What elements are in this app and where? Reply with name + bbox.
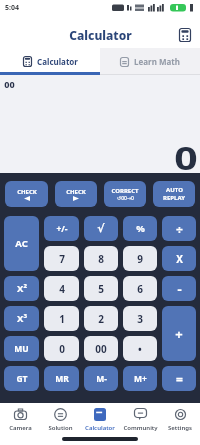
button[interactable]: 4 (44, 276, 79, 301)
button[interactable]: M- (84, 366, 118, 391)
staticText: 0 (59, 342, 65, 356)
staticText: % (136, 222, 145, 235)
button[interactable]: CHECK (5, 181, 48, 207)
staticText: = (176, 371, 183, 387)
staticText: 00 (95, 342, 107, 356)
staticText: + (175, 325, 183, 343)
button[interactable]: 6 (123, 276, 157, 301)
button[interactable]: ÷ (162, 216, 196, 241)
button[interactable]: +/- (44, 216, 79, 241)
staticText: AUTO (166, 186, 183, 194)
button[interactable] (179, 28, 191, 42)
staticText: - (177, 280, 182, 298)
staticText: Solution (48, 424, 73, 432)
staticText: CHECK (66, 188, 86, 196)
button[interactable]: M+ (123, 366, 157, 391)
button[interactable]: MR (44, 366, 79, 391)
staticText: Community (123, 424, 158, 432)
button[interactable]: 1 (44, 306, 79, 331)
staticText: 5 (98, 282, 104, 296)
staticText: 8 (98, 252, 104, 266)
staticText: Camera (9, 424, 32, 432)
button[interactable]: 8 (84, 246, 118, 271)
staticText: MR (55, 373, 69, 385)
button[interactable]: CHECK (55, 181, 97, 207)
button[interactable]: X² (4, 276, 39, 301)
button[interactable]: √ (84, 216, 118, 241)
button[interactable]: X³ (4, 306, 39, 331)
staticText: MU (14, 343, 29, 355)
staticText: Calculator (37, 56, 78, 67)
staticText: AC (15, 237, 28, 250)
staticText: X² (17, 282, 27, 295)
button[interactable]: • (123, 336, 157, 361)
staticText: ↺00→0 (117, 195, 134, 202)
button[interactable]: Settings (160, 403, 200, 437)
staticText: REPLAY (163, 194, 185, 202)
staticText: 7 (59, 252, 65, 266)
button[interactable]: GT (4, 366, 39, 391)
button[interactable]: CORRECT (104, 181, 146, 207)
button[interactable]: Calculator (0, 48, 100, 75)
button[interactable]: Learn Math (100, 48, 200, 75)
button[interactable]: Community (120, 403, 160, 437)
staticText: 00 (4, 78, 15, 90)
button[interactable]: AC (4, 216, 39, 271)
button[interactable]: 5 (84, 276, 118, 301)
button[interactable]: 3 (123, 306, 157, 331)
staticText: Learn Math (134, 56, 180, 67)
button[interactable]: 2 (84, 306, 118, 331)
staticText: • (138, 342, 142, 356)
staticText: 6 (137, 282, 143, 296)
button[interactable]: Solution (40, 403, 80, 437)
button[interactable]: Camera (0, 403, 40, 437)
button[interactable]: MU (4, 336, 39, 361)
staticText: Calculator (85, 424, 115, 432)
button[interactable]: 00 (84, 336, 118, 361)
button[interactable]: 9 (123, 246, 157, 271)
staticText: 1 (59, 312, 65, 326)
staticText: 5:04 (5, 3, 19, 13)
staticText: 9 (137, 252, 143, 266)
staticText: CORRECT (111, 187, 139, 195)
staticText: √ (97, 222, 105, 235)
button[interactable]: - (162, 276, 196, 301)
staticText: Calculator (69, 27, 132, 43)
button[interactable]: AUTO (153, 181, 195, 207)
staticText: 2 (98, 312, 104, 326)
button[interactable]: % (123, 216, 157, 241)
staticText: X (176, 252, 183, 266)
staticText: 3 (137, 312, 143, 326)
staticText: GT (16, 373, 28, 385)
staticText: 0 (174, 136, 198, 180)
button[interactable]: 7 (44, 246, 79, 271)
button[interactable]: = (162, 366, 196, 391)
button[interactable]: + (162, 306, 196, 361)
staticText: +/- (56, 223, 68, 235)
staticText: M- (96, 373, 107, 385)
button[interactable]: 0 (44, 336, 79, 361)
staticText: Settings (168, 424, 192, 432)
staticText: M+ (134, 373, 147, 385)
staticText: 4 (59, 282, 65, 296)
staticText: ÷ (176, 221, 183, 237)
staticText: X³ (17, 312, 27, 325)
button[interactable]: Calculator (80, 403, 120, 437)
staticText: CHECK (17, 188, 37, 196)
button[interactable]: X (162, 246, 196, 271)
